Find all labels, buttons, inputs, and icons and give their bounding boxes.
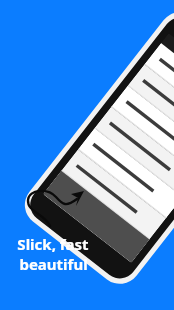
- staticText: Slick, fast: [17, 234, 89, 254]
- other: Phone showing app screen: [0, 0, 174, 310]
- staticText: beautiful: [19, 254, 88, 274]
- button[interactable]: Slick, fast: [4, 234, 102, 274]
